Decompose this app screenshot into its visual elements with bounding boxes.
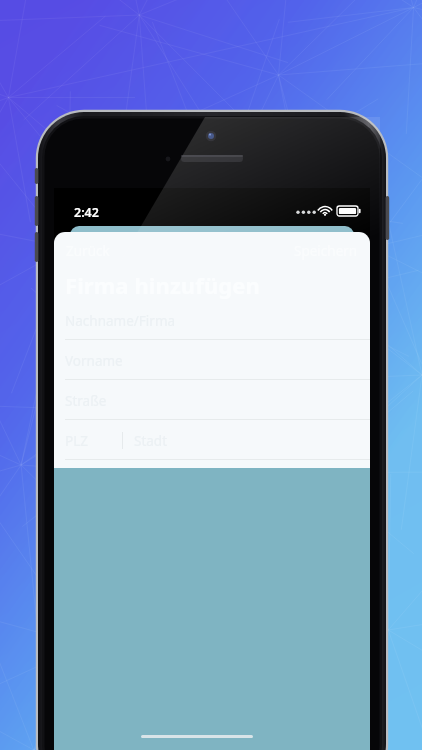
- staticText: Stadt: [134, 432, 168, 450]
- button[interactable]: Zurück: [54, 236, 122, 266]
- staticText: 2:42: [74, 204, 99, 221]
- staticText: Nachname/Firma: [65, 312, 176, 330]
- staticText: Straße: [65, 392, 107, 410]
- staticText: PLZ: [65, 432, 88, 450]
- staticText: Vorname: [65, 352, 123, 370]
- button[interactable]: Speichern: [282, 236, 370, 266]
